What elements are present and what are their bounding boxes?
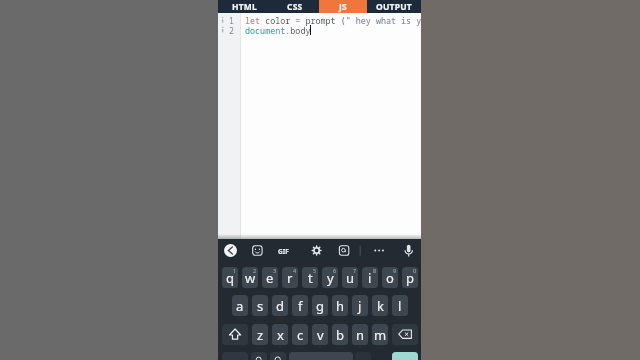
staticText: k [377,297,384,315]
staticText: a [236,297,244,315]
button[interactable]: w [242,267,258,288]
staticText: q [226,269,234,287]
button[interactable]: s [252,295,268,316]
button[interactable]: v [312,324,328,345]
button[interactable]: y [322,267,338,288]
staticText: 2 [253,267,257,274]
button[interactable]: p [402,267,418,288]
staticText: e [266,269,274,287]
button[interactable]: u [342,267,358,288]
staticText: 1 [233,267,237,274]
button[interactable]: i [362,267,378,288]
staticText: 6 [333,267,337,274]
staticText: b [336,326,344,344]
button[interactable] [222,324,248,345]
button[interactable]: f [292,295,308,316]
staticText: p [406,269,414,287]
staticText: 9 [393,267,397,274]
button[interactable]: HTML [218,0,271,13]
staticText: GIF [278,247,289,256]
staticText: CSS [287,1,303,13]
staticText: m [374,326,387,344]
staticText: i [368,269,372,287]
staticText: x [277,326,284,344]
staticText: OUTPUT [376,1,412,13]
staticText: JS [339,1,347,13]
button[interactable]: JS [319,0,367,13]
button[interactable]: c [292,324,308,345]
button[interactable]: OUTPUT [367,0,421,13]
staticText: 0 [413,267,417,274]
button[interactable]: h [332,295,348,316]
staticText: d [276,297,284,315]
button[interactable]: x [272,324,288,345]
button[interactable]: n [352,324,368,345]
staticText: 2 [229,25,234,36]
staticText: HTML [232,1,257,13]
staticText: c [297,326,304,344]
staticText: h [336,297,345,315]
button[interactable]: l [392,295,408,316]
staticText: w [245,269,256,287]
button[interactable] [270,352,286,360]
button[interactable]: q [222,267,238,288]
button[interactable]: r [282,267,298,288]
button[interactable] [392,352,418,360]
button[interactable]: g [312,295,328,316]
button[interactable]: e [262,267,278,288]
staticText: r [287,269,293,287]
staticText: u [346,269,355,287]
staticText: g [316,297,324,315]
button[interactable]: o [382,267,398,288]
staticText: document.body [245,25,311,36]
button[interactable]: a [232,295,248,316]
button[interactable] [392,324,418,345]
staticText: l [398,297,402,315]
button[interactable]: d [272,295,288,316]
button[interactable]: j [352,295,368,316]
staticText: v [317,326,324,344]
staticText: let color = prompt (" hey what is y [245,15,422,26]
button[interactable]: b [332,324,348,345]
staticText: t [308,269,313,287]
staticText: 5 [313,267,317,274]
staticText: 7 [353,267,357,274]
staticText: o [386,269,394,287]
staticText: 8 [373,267,377,274]
staticText: 3 [273,267,277,274]
staticText: n [356,326,365,344]
button[interactable] [224,244,237,257]
button[interactable]: t [302,267,318,288]
staticText: f [298,297,303,315]
button[interactable] [251,352,267,360]
staticText: z [257,326,264,344]
staticText: y [327,269,334,287]
button[interactable]: z [252,324,268,345]
staticText: j [358,297,362,315]
staticText: s [257,297,264,315]
button[interactable]: k [372,295,388,316]
staticText: 1 [229,15,234,26]
button[interactable]: CSS [271,0,319,13]
button[interactable]: m [372,324,388,345]
staticText: 4 [293,267,297,274]
